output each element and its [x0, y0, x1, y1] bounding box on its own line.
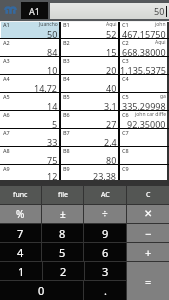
button[interactable]: 4 [0, 243, 41, 261]
button[interactable]: + [127, 243, 169, 261]
button[interactable]: C7 [120, 129, 167, 146]
button[interactable]: 0 [0, 281, 83, 300]
staticText: john car diffe [135, 111, 166, 118]
staticText: 7 [17, 226, 24, 241]
staticText: 50 [47, 28, 58, 40]
staticText: A3 [3, 57, 10, 64]
staticText: = [145, 274, 152, 289]
staticText: A1 [29, 5, 40, 17]
button[interactable]: A8 [1, 147, 59, 164]
staticText: 40 [106, 82, 117, 94]
staticText: ✕ [144, 208, 153, 220]
button[interactable]: B6 [61, 111, 118, 128]
button[interactable]: C1 [120, 21, 167, 38]
staticText: C9 [122, 165, 129, 172]
staticText: 23.38 [93, 170, 117, 182]
staticText: A4 [3, 75, 10, 82]
staticText: . [104, 283, 107, 298]
staticText: 668.38000 [122, 46, 166, 58]
button[interactable]: ± [42, 205, 83, 223]
button[interactable]: 5 [42, 243, 83, 261]
staticText: 84 [47, 46, 58, 58]
button[interactable]: func [0, 186, 41, 204]
button[interactable]: App icon [3, 3, 18, 18]
staticText: 75 [47, 154, 58, 166]
button[interactable]: − [127, 224, 169, 242]
staticText: 52 [106, 28, 117, 40]
button[interactable]: C5 [120, 93, 167, 110]
button[interactable]: B7 [61, 129, 118, 146]
button[interactable]: % [0, 205, 41, 223]
button[interactable]: A9 [1, 165, 59, 180]
button[interactable]: A5 [1, 93, 59, 110]
staticText: 5 [59, 245, 66, 260]
staticText: C6 [122, 111, 129, 118]
button[interactable]: A1 [21, 2, 48, 19]
button[interactable]: B5 [61, 93, 118, 110]
staticText: B7 [63, 129, 70, 136]
button[interactable]: A3 [1, 57, 59, 74]
staticText: 10 [47, 64, 58, 76]
button[interactable]: A4 [1, 75, 59, 92]
staticText: AC [101, 190, 110, 200]
staticText: A6 [3, 111, 10, 118]
button[interactable]: C6 [120, 111, 167, 128]
staticText: 80 [106, 154, 117, 166]
staticText: 8 [59, 226, 66, 241]
button[interactable]: 6 [84, 243, 126, 261]
button[interactable]: B3 [61, 57, 118, 74]
button[interactable]: B9 [61, 165, 118, 180]
staticText: C2 [122, 39, 129, 46]
staticText: C5 [122, 93, 129, 100]
button[interactable]: . [84, 281, 126, 300]
staticText: ÷ [102, 207, 108, 221]
button[interactable]: C4 [120, 75, 167, 92]
button[interactable]: C2 [120, 39, 167, 56]
button[interactable]: ÷ [84, 205, 126, 223]
button[interactable]: 7 [0, 224, 41, 242]
button[interactable]: A7 [1, 129, 59, 146]
staticText: A2 [3, 39, 10, 46]
staticText: B5 [63, 93, 70, 100]
button[interactable]: C9 [120, 165, 167, 180]
staticText: B3 [63, 57, 70, 64]
button[interactable]: AC [84, 186, 126, 204]
staticText: + [145, 245, 152, 260]
staticText: func [13, 190, 28, 200]
button[interactable]: C [127, 186, 169, 204]
button[interactable]: B2 [61, 39, 118, 56]
button[interactable]: file [42, 186, 83, 204]
button[interactable]: 9 [84, 224, 126, 242]
button[interactable]: 1 [0, 262, 42, 280]
staticText: 6 [102, 245, 109, 260]
staticText: 2 [60, 264, 67, 279]
staticText: 5 [52, 118, 58, 130]
button[interactable]: A2 [1, 39, 59, 56]
staticText: 335.29998 [122, 100, 166, 112]
staticText: B8 [63, 147, 70, 154]
button[interactable]: 8 [42, 224, 83, 242]
button[interactable]: 2 [43, 262, 84, 280]
button[interactable]: B1 [61, 21, 118, 38]
button[interactable]: 50 [50, 3, 169, 19]
button[interactable]: A1 [1, 21, 59, 38]
staticText: A8 [3, 147, 10, 154]
button[interactable]: ✕ [127, 205, 169, 223]
staticText: − [145, 226, 152, 241]
staticText: ± [60, 207, 66, 221]
button[interactable]: 3 [85, 262, 126, 280]
button[interactable]: B4 [61, 75, 118, 92]
staticText: 467.15750 [122, 28, 166, 40]
staticText: A7 [3, 129, 10, 136]
staticText: 4 [17, 245, 24, 260]
staticText: 14 [47, 100, 58, 112]
button[interactable]: B8 [61, 147, 118, 164]
staticText: C3 [122, 57, 129, 64]
button[interactable]: = [127, 262, 169, 300]
button[interactable]: A6 [1, 111, 59, 128]
button[interactable]: C8 [120, 147, 167, 164]
staticText: 3 [102, 264, 109, 279]
button[interactable]: C3 [120, 57, 167, 74]
staticText: 92.35000 [127, 118, 166, 130]
staticText: john [155, 21, 166, 28]
